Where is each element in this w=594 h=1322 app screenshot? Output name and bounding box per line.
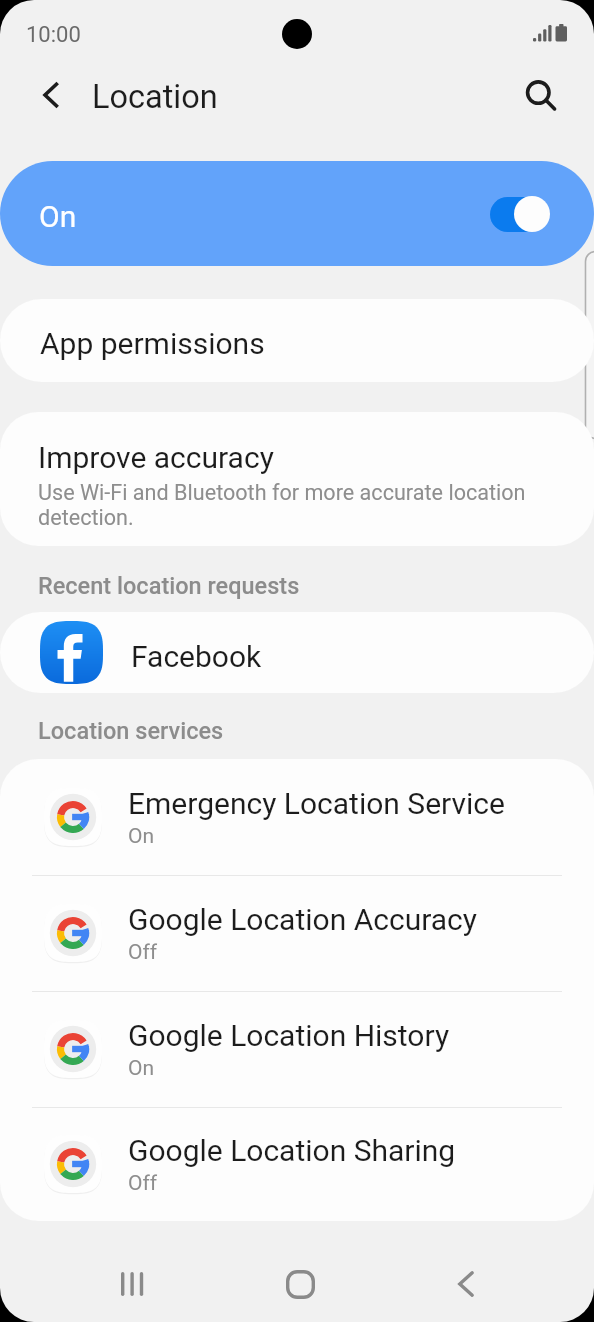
staticText: Off	[128, 1171, 158, 1196]
staticText: Facebook	[131, 639, 262, 674]
button[interactable]: Back	[28, 72, 74, 118]
staticText: Recent location requests	[38, 572, 300, 600]
staticText: Off	[128, 940, 158, 965]
staticText: Location	[92, 78, 218, 116]
staticText: Emergency Location Service	[128, 786, 505, 821]
button[interactable]: Emergency Location Service	[0, 759, 594, 875]
button[interactable]: Facebook	[0, 612, 594, 693]
button[interactable]: Google Location History	[0, 991, 594, 1107]
button[interactable]: Google Location Sharing	[0, 1107, 594, 1221]
staticText: Google Location Accuracy	[128, 902, 477, 937]
staticText: Location services	[38, 717, 224, 745]
button[interactable]: Google Location Accuracy	[0, 875, 594, 991]
staticText: On	[39, 199, 77, 234]
staticText: Google Location Sharing	[128, 1133, 456, 1168]
button[interactable]: Home	[258, 1242, 342, 1322]
staticText: Improve accuracy	[38, 440, 274, 475]
button[interactable]: Back	[424, 1242, 508, 1322]
staticText: 10:00	[26, 22, 81, 48]
staticText: App permissions	[40, 326, 265, 361]
staticText: On	[128, 824, 155, 849]
button[interactable]: Search	[517, 72, 565, 120]
button[interactable]: On	[0, 161, 594, 266]
staticText: Google Location History	[128, 1018, 450, 1053]
button[interactable]: Recent apps	[91, 1242, 175, 1322]
button[interactable]: Improve accuracy	[0, 412, 594, 546]
button[interactable]: App permissions	[0, 299, 594, 382]
staticText: On	[128, 1056, 155, 1081]
staticText: Use Wi-Fi and Bluetooth for more accurat…	[38, 480, 538, 530]
